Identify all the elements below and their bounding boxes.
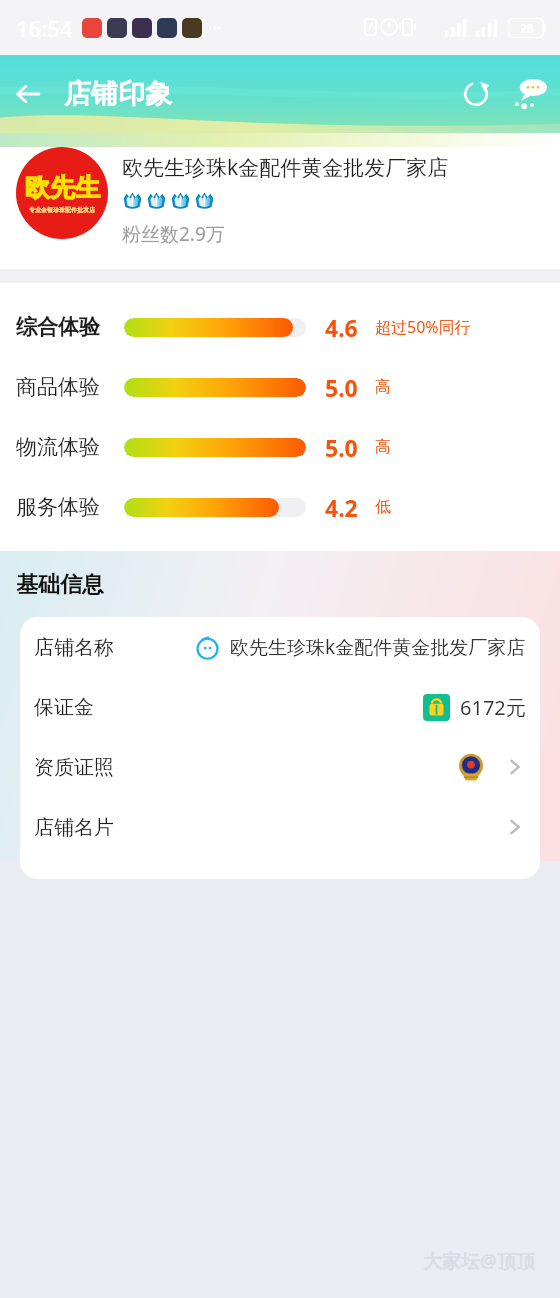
staticText: 欧先生珍珠k金配件黄金批发厂家店 xyxy=(122,153,449,182)
staticText: 保证金 xyxy=(34,695,94,720)
staticText: 5.0 xyxy=(325,372,371,403)
button[interactable]: 物流体验 xyxy=(0,417,560,477)
staticText: 物流体验 xyxy=(16,434,124,460)
staticText: 店铺名称 xyxy=(34,635,114,660)
staticText: 店铺印象 xyxy=(64,77,172,111)
button[interactable]: More options xyxy=(504,66,560,122)
staticText: 超过50%同行 xyxy=(375,316,471,338)
button[interactable]: 保证金 xyxy=(20,677,540,737)
staticText: 4.6 xyxy=(325,312,371,343)
staticText: 6172元 xyxy=(460,694,526,721)
staticText: 店铺名片 xyxy=(34,815,114,840)
button[interactable]: 资质证照 xyxy=(20,737,540,797)
staticText: 28 xyxy=(520,20,534,36)
button[interactable]: 商品体验 xyxy=(0,357,560,417)
staticText: 基础信息 xyxy=(16,571,104,599)
button[interactable]: 店铺名称 xyxy=(20,617,540,677)
button[interactable]: 店铺名片 xyxy=(20,797,540,857)
button[interactable]: Refresh xyxy=(448,66,504,122)
button[interactable]: 服务体验 xyxy=(0,477,560,537)
staticText: 资质证照 xyxy=(34,755,114,780)
staticText: 低 xyxy=(375,497,391,517)
staticText: 高 xyxy=(375,437,391,457)
staticText: 综合体验 xyxy=(16,314,124,340)
staticText: 5.0 xyxy=(325,432,371,463)
staticText: 高 xyxy=(375,377,391,397)
button[interactable]: 综合体验 xyxy=(0,297,560,357)
button[interactable]: Back xyxy=(0,66,56,122)
button[interactable]: 欧先生 xyxy=(16,147,108,239)
staticText: 服务体验 xyxy=(16,494,124,520)
staticText: 商品体验 xyxy=(16,374,124,400)
staticText: 4.2 xyxy=(325,492,371,523)
staticText: 粉丝数2.9万 xyxy=(122,221,225,247)
staticText: 大家坛@顶顶 xyxy=(423,1248,536,1274)
staticText: 专业金银珍珠配件批发店 xyxy=(22,206,102,214)
staticText: 16:54 xyxy=(16,13,73,43)
staticText: 欧先生珍珠k金配件黄金批发厂家店 xyxy=(230,634,526,660)
staticText: 欧先生 xyxy=(25,172,100,203)
